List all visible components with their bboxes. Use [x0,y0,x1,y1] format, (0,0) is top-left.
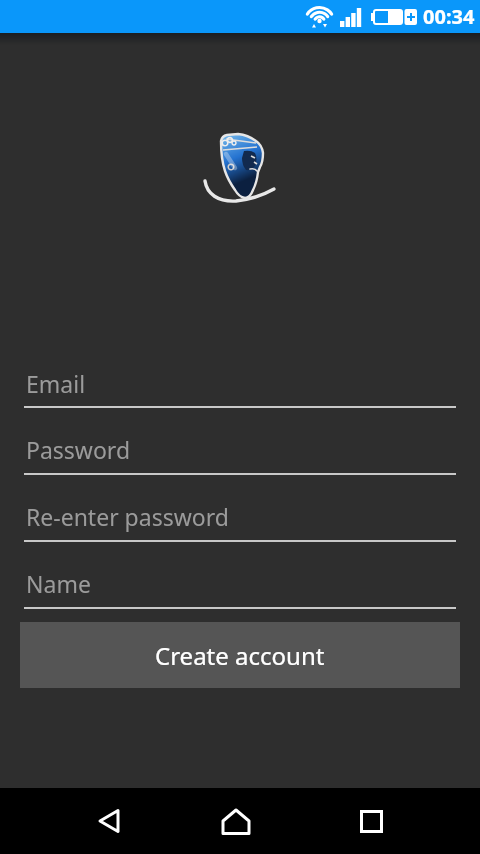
button[interactable]: Email [24,362,456,408]
button[interactable] [311,788,431,854]
staticText: Re-enter password [26,501,229,532]
staticText: Password [26,434,131,465]
staticText: Name [26,568,91,599]
button[interactable] [49,788,169,854]
button[interactable]: Re-enter password [24,495,456,542]
button[interactable]: Password [24,428,456,475]
staticText: 00:34 [423,3,475,30]
staticText: Email [26,368,86,399]
button[interactable]: Name [24,562,456,609]
staticText: Create account [155,639,325,672]
button[interactable]: Create account [20,622,460,688]
button[interactable] [176,788,296,854]
